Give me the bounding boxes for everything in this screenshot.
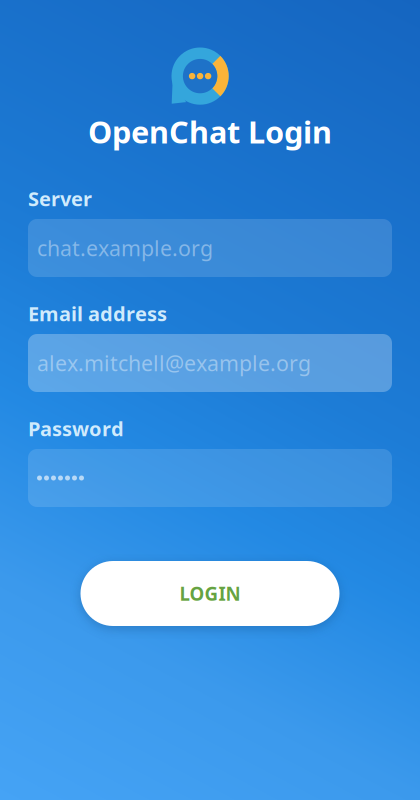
button[interactable]: alex.mitchell@example.org	[28, 334, 392, 392]
button[interactable]	[28, 449, 392, 507]
staticText: Server	[28, 185, 92, 212]
staticText: Password	[28, 415, 124, 442]
staticText: OpenChat Login	[88, 111, 332, 152]
button[interactable]: chat.example.org	[28, 219, 392, 277]
staticText: Email address	[28, 300, 167, 327]
button[interactable]: LOGIN	[80, 561, 339, 626]
staticText: chat.example.org	[37, 234, 213, 262]
staticText: alex.mitchell@example.org	[37, 349, 311, 377]
staticText: LOGIN	[179, 581, 240, 606]
